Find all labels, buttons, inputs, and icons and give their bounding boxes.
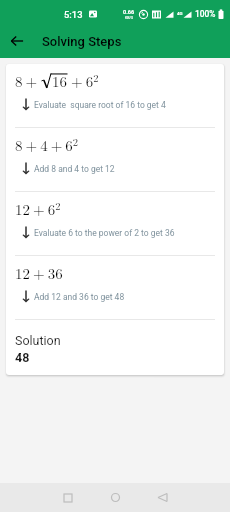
staticText: 4G (177, 11, 183, 16)
staticText: 0.66 (123, 9, 135, 16)
staticText: Evaluate square root of 16 to get 4 (34, 100, 166, 110)
staticText: Solution (15, 333, 61, 348)
staticText: Add 12 and 36 to get 48 (34, 292, 125, 302)
button[interactable]: Back (0, 24, 34, 58)
button[interactable]: 12 + 36 (6, 256, 224, 319)
button[interactable]: 12 + 62 (6, 192, 224, 255)
staticText: KB/S (125, 16, 134, 20)
button[interactable]: 8 + (6, 64, 224, 127)
staticText: 48 (15, 350, 30, 365)
staticText: 5:13 (64, 9, 83, 20)
button[interactable]: Recents (50, 483, 86, 512)
staticText: Solving Steps (42, 34, 122, 49)
button[interactable]: Home (97, 483, 133, 512)
staticText: + 62 (68, 70, 99, 91)
button[interactable]: 8 + 4 + 62 (6, 128, 224, 191)
staticText: Add 8 and 4 to get 12 (34, 164, 115, 174)
button[interactable]: Back (144, 483, 180, 512)
staticText: 12 + 36 (15, 262, 63, 283)
staticText: 8 + (15, 70, 41, 91)
staticText: 8 + 4 + 62 (15, 134, 79, 155)
staticText: 16 (52, 70, 68, 91)
staticText: 12 + 62 (15, 198, 61, 219)
staticText: Evaluate 6 to the power of 2 to get 36 (34, 228, 175, 238)
staticText: 100% (195, 9, 216, 19)
